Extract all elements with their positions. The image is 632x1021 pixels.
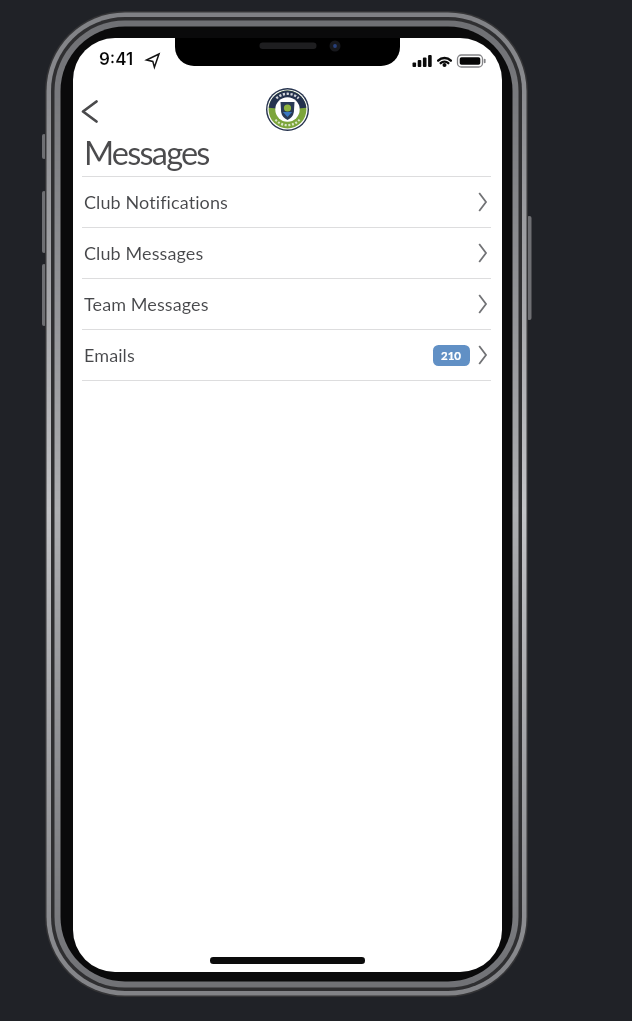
staticText: Team Messages	[84, 293, 209, 315]
staticText: Club Messages	[84, 242, 204, 264]
button[interactable]: Emails	[73, 330, 502, 380]
staticText: Club Notifications	[84, 191, 228, 213]
staticText: Emails	[84, 344, 135, 366]
button[interactable]: Club Messages	[73, 228, 502, 278]
staticText: 9:41	[99, 49, 134, 70]
button[interactable]	[73, 92, 113, 132]
button[interactable]: Team Messages	[73, 279, 502, 329]
staticText: 210	[441, 349, 462, 363]
staticText: Messages	[84, 133, 209, 172]
button[interactable]: Club Notifications	[73, 177, 502, 227]
